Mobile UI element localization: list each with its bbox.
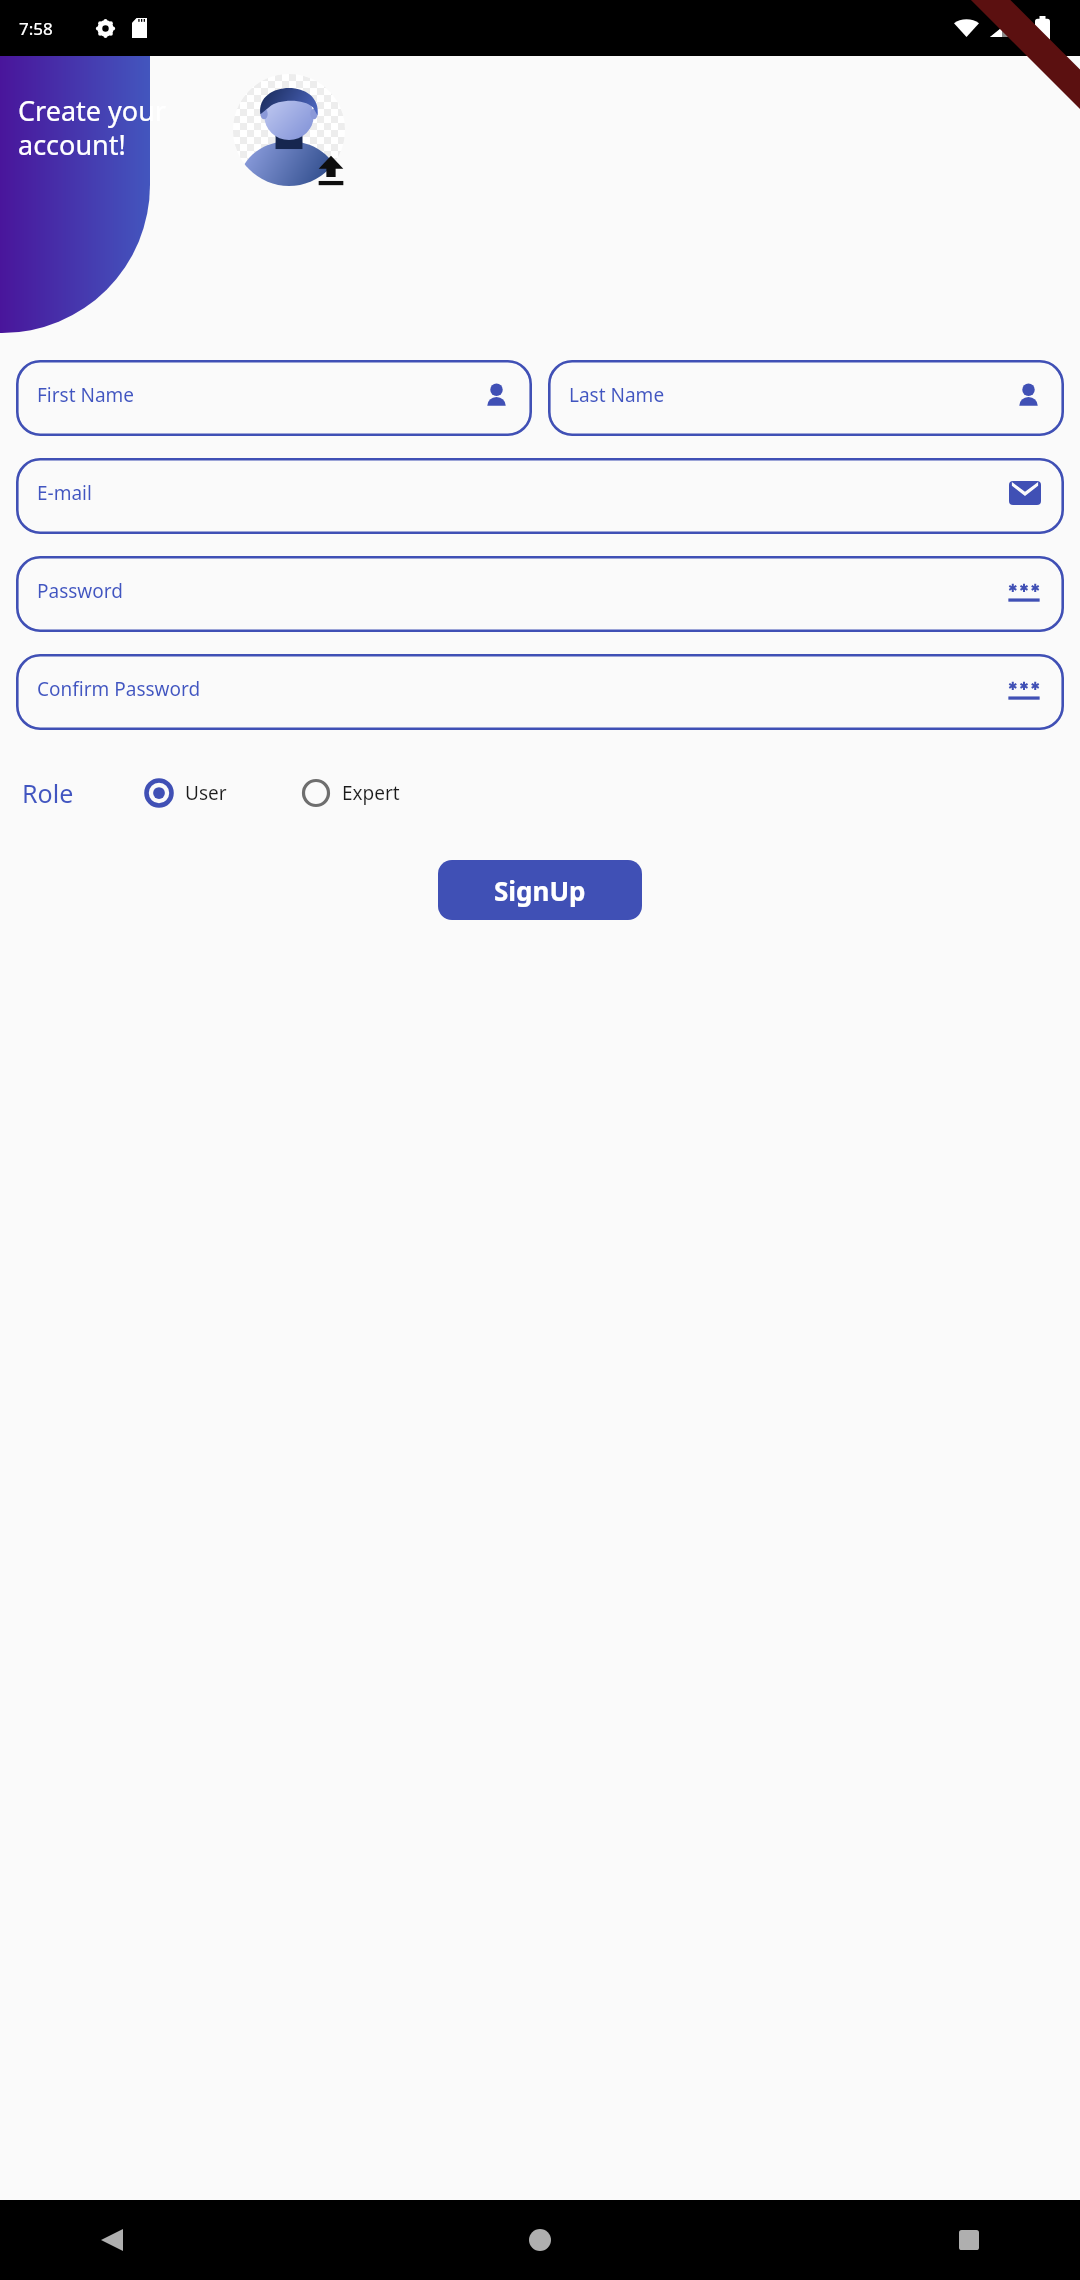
button[interactable]: User	[144, 772, 227, 814]
button[interactable]: Upload profile photo	[233, 74, 345, 186]
button[interactable]: SignUp	[438, 860, 642, 920]
staticText: Last Name	[569, 382, 665, 408]
staticText: User	[185, 780, 227, 806]
staticText: Password	[37, 578, 123, 604]
staticText: Role	[22, 776, 144, 810]
staticText: 7:58	[19, 17, 53, 40]
button[interactable]: E-mail	[16, 458, 1064, 534]
button[interactable]: Last Name	[548, 360, 1064, 436]
staticText: Expert	[342, 780, 400, 806]
staticText: Create your account!	[18, 92, 166, 163]
button[interactable]: Password	[16, 556, 1064, 632]
button[interactable]: First Name	[16, 360, 532, 436]
staticText: Confirm Password	[37, 676, 201, 702]
other: Home	[529, 2229, 551, 2251]
other: Back	[101, 2229, 123, 2251]
button[interactable]: Confirm Password	[16, 654, 1064, 730]
button[interactable]: Expert	[301, 772, 400, 814]
staticText: E-mail	[37, 480, 92, 506]
staticText: First Name	[37, 382, 135, 408]
staticText: SignUp	[494, 873, 586, 908]
other: Recents	[959, 2230, 979, 2250]
